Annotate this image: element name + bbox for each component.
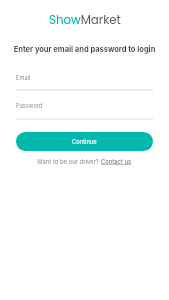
staticText: Want to be our driver? bbox=[37, 158, 101, 165]
button[interactable]: Continue bbox=[16, 132, 153, 151]
staticText: Password bbox=[16, 102, 43, 109]
staticText: Continue bbox=[72, 138, 97, 145]
staticText: Enter your email and password to login bbox=[0, 45, 169, 54]
staticText: ShowMarket bbox=[49, 12, 121, 29]
staticText: Email bbox=[16, 74, 31, 81]
button[interactable]: Contact us bbox=[101, 158, 132, 165]
